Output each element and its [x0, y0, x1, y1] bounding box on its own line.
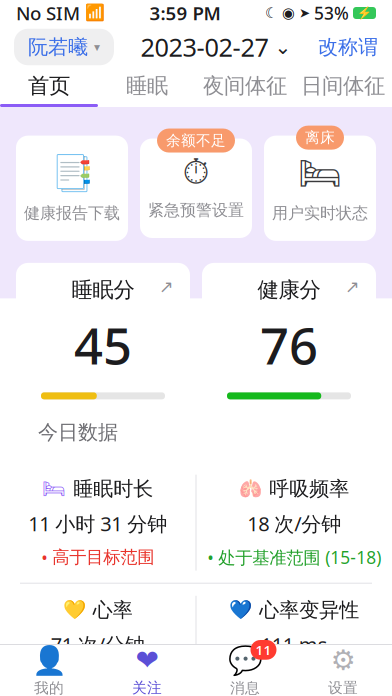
- staticText: ⌄: [274, 36, 291, 58]
- staticText: ↗: [159, 277, 174, 297]
- staticText: 睡眠分: [71, 277, 134, 303]
- staticText: 111 ms: [261, 631, 328, 658]
- staticText: 高于目标范围: [52, 547, 154, 568]
- button[interactable]: 健康分: [202, 263, 376, 415]
- staticText: 消息: [230, 679, 260, 696]
- staticText: ↗: [345, 277, 360, 297]
- button[interactable]: ❤: [98, 645, 196, 696]
- staticText: 日间体征: [301, 73, 385, 99]
- staticText: ⚙: [330, 644, 355, 676]
- staticText: 🛏: [42, 478, 66, 499]
- staticText: ◉: [282, 5, 295, 21]
- staticText: 呼吸频率: [269, 477, 349, 501]
- button[interactable]: 阮若曦: [14, 29, 114, 65]
- staticText: 11: [255, 641, 271, 659]
- staticText: 阮若曦: [28, 35, 88, 59]
- staticText: ▾: [94, 40, 100, 54]
- button[interactable]: 日间体征: [294, 68, 392, 104]
- staticText: 余额不足: [166, 131, 226, 149]
- staticText: 11 小时 31 分钟: [28, 510, 167, 537]
- staticText: 💛: [63, 599, 86, 621]
- button[interactable]: 睡眠分: [16, 263, 190, 415]
- staticText: 3:59 PM: [149, 1, 220, 25]
- staticText: 离床: [305, 129, 335, 147]
- staticText: 设置: [328, 679, 358, 696]
- staticText: ☾: [265, 5, 278, 21]
- button[interactable]: ⏱: [140, 128, 252, 238]
- staticText: No SIM: [16, 1, 80, 25]
- staticText: 用户实时状态: [272, 203, 368, 223]
- staticText: 18 次/分钟: [247, 510, 341, 537]
- staticText: 今日数据: [38, 420, 118, 445]
- staticText: 2023-02-27: [140, 30, 268, 64]
- staticText: 首页: [28, 73, 70, 99]
- staticText: 紧急预警设置: [148, 200, 244, 220]
- button[interactable]: 📑: [16, 126, 128, 241]
- staticText: 处于基准范围 (70-77): [22, 667, 185, 690]
- staticText: 夜间体征: [203, 73, 287, 99]
- staticText: 📶: [85, 4, 105, 22]
- staticText: 处于基准范围 (15-18): [218, 546, 381, 569]
- staticText: ❤: [135, 644, 158, 676]
- staticText: 心率: [93, 598, 133, 622]
- staticText: 🫁: [239, 478, 262, 499]
- staticText: 睡眠: [126, 73, 168, 99]
- staticText: 71 次/分钟: [51, 631, 145, 658]
- button[interactable]: 首页: [0, 68, 98, 104]
- staticText: 76: [260, 311, 318, 378]
- staticText: 🛏: [298, 154, 342, 193]
- button[interactable]: 睡眠: [98, 68, 196, 104]
- staticText: ➤: [299, 5, 310, 20]
- staticText: 📑: [50, 154, 93, 193]
- staticText: 💙: [229, 599, 252, 621]
- button[interactable]: 👤: [0, 645, 98, 696]
- button[interactable]: 2023-02-27: [140, 30, 291, 64]
- staticText: 💬: [227, 644, 262, 676]
- button[interactable]: 🛏: [264, 126, 376, 241]
- staticText: •: [41, 546, 48, 569]
- button[interactable]: 💬: [196, 645, 294, 696]
- button[interactable]: 夜间体征: [196, 68, 294, 104]
- staticText: ⏱: [182, 156, 209, 190]
- staticText: ⚡: [357, 6, 372, 20]
- staticText: 健康报告下载: [24, 203, 120, 223]
- button[interactable]: 改称谓: [318, 35, 378, 59]
- staticText: •: [207, 546, 214, 569]
- staticText: 处于基准范围 (80-237): [213, 667, 386, 690]
- staticText: 45: [74, 311, 132, 378]
- button[interactable]: ⚙: [294, 645, 392, 696]
- staticText: 👤: [31, 644, 66, 676]
- staticText: 关注: [132, 679, 162, 696]
- staticText: 健康分: [257, 277, 320, 303]
- staticText: 改称谓: [318, 35, 378, 59]
- staticText: 我的: [34, 679, 64, 696]
- staticText: 心率变异性: [259, 598, 359, 622]
- staticText: 53%: [314, 1, 349, 24]
- staticText: 睡眠时长: [73, 477, 153, 501]
